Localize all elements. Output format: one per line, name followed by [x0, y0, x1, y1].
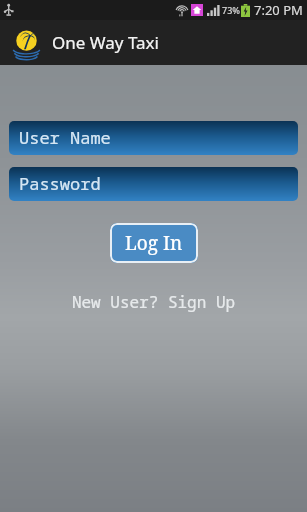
- button[interactable]: User Name: [9, 121, 298, 155]
- button[interactable]: New User? Sign Up: [0, 289, 307, 315]
- staticText: 73%: [222, 4, 240, 16]
- staticText: Password: [19, 172, 101, 195]
- staticText: Log In: [125, 230, 183, 256]
- staticText: One Way Taxi: [52, 31, 159, 54]
- button[interactable]: Password: [9, 167, 298, 201]
- staticText: 7:20 PM: [254, 1, 303, 19]
- staticText: User Name: [19, 126, 111, 149]
- button[interactable]: Log In: [110, 223, 198, 263]
